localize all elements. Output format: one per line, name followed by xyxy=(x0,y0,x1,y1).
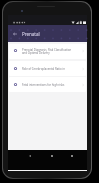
button[interactable]: Back xyxy=(8,25,22,42)
button[interactable]: Home xyxy=(48,152,55,159)
button[interactable]: Prenatal Diagnosis, Risk Classification … xyxy=(9,44,86,59)
button[interactable]: Recents xyxy=(68,152,75,159)
staticText: Prenatal Diagnosis, Risk Classification … xyxy=(22,48,81,55)
staticText: Role of Cerebroplacental Ratio in xyxy=(22,67,81,71)
button[interactable]: Back xyxy=(26,152,33,159)
staticText: Fetal interventions for high risks xyxy=(22,83,81,87)
button[interactable]: Fetal interventions for high risks xyxy=(9,77,86,92)
button[interactable]: Role of Cerebroplacental Ratio in xyxy=(9,61,86,76)
staticText: Prenatal xyxy=(22,31,40,37)
